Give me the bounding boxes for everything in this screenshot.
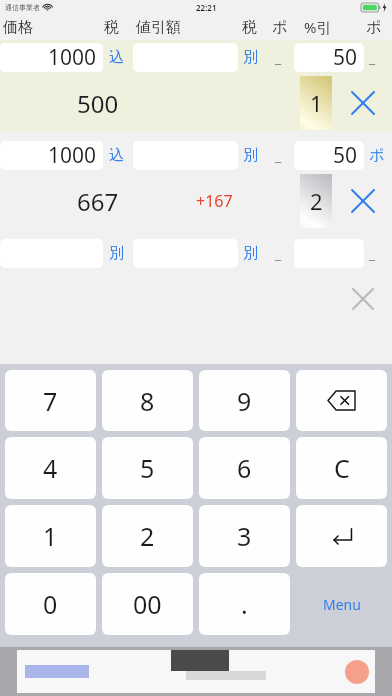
- staticText: 22:21: [196, 2, 217, 13]
- staticText: _: [275, 244, 282, 263]
- staticText: 別: [109, 244, 124, 263]
- staticText: 50: [333, 43, 358, 72]
- staticText: 3: [237, 519, 252, 553]
- staticText: _: [275, 48, 282, 67]
- staticText: Menu: [323, 595, 361, 614]
- staticText: 1: [310, 88, 323, 118]
- button[interactable]: 0: [5, 573, 96, 635]
- button[interactable]: 5: [102, 437, 193, 499]
- button[interactable]: Advertisement: [17, 650, 375, 693]
- button[interactable]: .: [199, 573, 290, 635]
- staticText: 別: [243, 48, 258, 67]
- staticText: 税: [104, 18, 119, 37]
- button[interactable]: Enter: [296, 505, 387, 567]
- button[interactable]: Delete row: [350, 188, 376, 214]
- staticText: 1000: [48, 43, 97, 72]
- button[interactable]: Delete row: [350, 90, 376, 116]
- staticText: 込: [109, 146, 124, 165]
- staticText: 667: [77, 185, 119, 218]
- button[interactable]: 7: [5, 370, 96, 431]
- button[interactable]: 3: [199, 505, 290, 567]
- staticText: 別: [243, 244, 258, 263]
- staticText: 税: [242, 18, 257, 37]
- staticText: +167: [196, 190, 233, 212]
- button[interactable]: Delete: [296, 370, 387, 431]
- staticText: _: [369, 48, 376, 67]
- button[interactable]: 6: [199, 437, 290, 499]
- button[interactable]: 00: [102, 573, 193, 635]
- staticText: ポ: [366, 18, 382, 37]
- staticText: 2: [310, 186, 323, 216]
- staticText: _: [369, 244, 376, 263]
- button[interactable]: 1: [5, 505, 96, 567]
- staticText: 2: [140, 519, 155, 553]
- button[interactable]: 1: [300, 76, 332, 130]
- staticText: 込: [109, 48, 124, 67]
- staticText: %引: [304, 17, 332, 37]
- button[interactable]: 9: [199, 370, 290, 431]
- button[interactable]: 1000: [0, 43, 103, 72]
- staticText: 7: [43, 384, 58, 418]
- staticText: .: [241, 587, 248, 621]
- button[interactable]: 2: [300, 174, 332, 228]
- staticText: 価格: [3, 18, 33, 37]
- staticText: 8: [140, 384, 155, 418]
- staticText: 別: [243, 146, 258, 165]
- staticText: C: [334, 451, 350, 485]
- staticText: 50: [333, 141, 358, 170]
- staticText: 4: [43, 451, 58, 485]
- staticText: ポ: [272, 18, 288, 37]
- button[interactable]: 1000: [0, 141, 103, 170]
- button[interactable]: 50: [294, 43, 364, 72]
- staticText: 5: [140, 451, 155, 485]
- staticText: 通信事業者: [5, 3, 40, 12]
- staticText: _: [275, 146, 282, 165]
- staticText: ポ: [369, 146, 385, 165]
- staticText: 1000: [48, 141, 97, 170]
- staticText: 1: [43, 519, 58, 553]
- staticText: 500: [77, 87, 119, 120]
- staticText: 6: [237, 451, 252, 485]
- staticText: 9: [237, 384, 252, 418]
- button[interactable]: 50: [294, 141, 364, 170]
- button[interactable]: 2: [102, 505, 193, 567]
- button[interactable]: 8: [102, 370, 193, 431]
- staticText: 値引額: [136, 18, 181, 37]
- button[interactable]: C: [296, 437, 387, 499]
- button[interactable]: 4: [5, 437, 96, 499]
- button[interactable]: Menu: [296, 573, 387, 635]
- button[interactable]: Delete row: [350, 286, 376, 312]
- staticText: 0: [43, 587, 58, 621]
- staticText: 00: [133, 587, 162, 621]
